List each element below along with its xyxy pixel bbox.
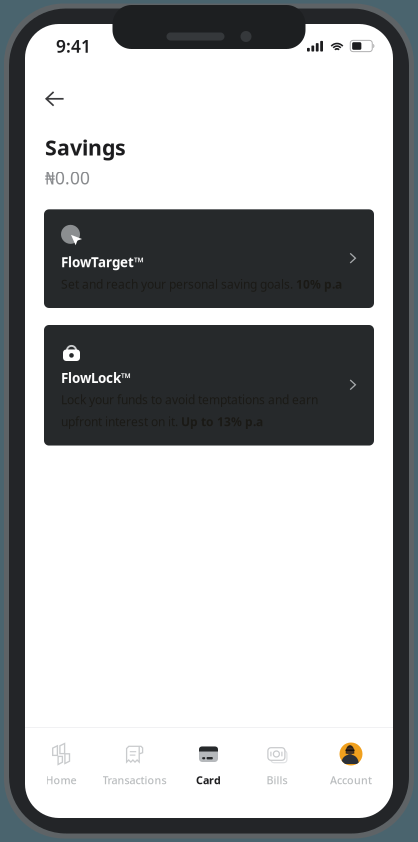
button[interactable]: Transactions [97, 742, 172, 787]
button[interactable]: FlowLock™ [44, 325, 374, 446]
staticText: Home [45, 773, 76, 787]
button[interactable]: Card [172, 742, 245, 787]
staticText: FlowTarget™ [61, 253, 144, 271]
button[interactable]: Back [36, 82, 73, 116]
button[interactable]: FlowTarget™ [44, 209, 374, 308]
staticText: Transactions [102, 773, 166, 787]
staticText: Account [330, 773, 372, 787]
staticText: Bills [266, 773, 287, 787]
staticText: Lock your funds to avoid temptations and… [61, 392, 318, 408]
staticText: 9:41 [56, 34, 91, 57]
staticText: ₦0.00 [45, 166, 90, 189]
staticText: FlowLock™ [61, 369, 131, 387]
staticText: upfront interest on it. Up to 13% p.a [61, 414, 263, 429]
button[interactable]: Account [309, 742, 393, 787]
staticText: Card [196, 773, 221, 787]
button[interactable]: Home [25, 742, 97, 787]
staticText: Set and reach your personal saving goals… [61, 276, 342, 292]
staticText: Savings [45, 133, 126, 161]
button[interactable]: Bills [245, 742, 309, 787]
